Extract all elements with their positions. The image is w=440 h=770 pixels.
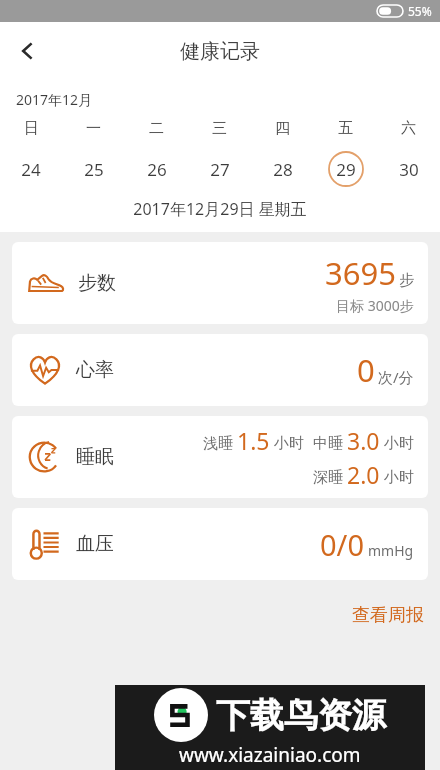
staticText: 小时 [274,434,304,453]
staticText: 查看周报 [352,604,424,627]
button[interactable]: 27 [188,148,251,190]
staticText: 24 [21,158,41,181]
staticText: 小时 [384,434,414,453]
button[interactable]: 查看周报 [336,598,440,633]
staticText: 55% [408,3,432,19]
button[interactable]: 睡眠 [12,416,428,498]
button[interactable]: 24 [0,148,62,190]
staticText: 2.0 [347,459,380,490]
staticText: 健康记录 [180,39,260,64]
staticText: 26 [147,158,167,181]
button[interactable]: 步数 [12,242,428,324]
staticText: 睡眠 [76,445,114,469]
staticText: 一 [86,119,101,138]
staticText: 浅睡 [203,434,233,453]
staticText: 三 [212,119,227,138]
staticText: www.xiazainiao.com [179,742,361,768]
button[interactable]: 26 [125,148,188,190]
button[interactable]: 25 [62,148,125,190]
button[interactable]: Back [0,23,56,79]
staticText: 二 [149,119,164,138]
staticText: 2017年12月29日 星期五 [0,198,440,220]
staticText: 27 [210,158,230,181]
staticText: 2017年12月 [16,90,93,109]
staticText: 3695 [325,252,396,294]
button[interactable]: 30 [377,148,440,190]
staticText: 深睡 [313,468,343,487]
staticText: 日 [24,119,39,138]
staticText: mmHg [368,541,414,560]
staticText: 小时 [384,468,414,487]
staticText: 五 [338,119,353,138]
button[interactable]: 心率 [12,334,428,406]
staticText: 血压 [76,532,114,556]
staticText: 0/0 [320,525,364,564]
button[interactable]: 28 [251,148,314,190]
staticText: 29 [336,158,356,181]
staticText: 3.0 [347,425,380,456]
staticText: 28 [273,158,293,181]
staticText: 1.5 [237,425,270,456]
staticText: 四 [275,119,290,138]
button[interactable]: 血压 [12,508,428,580]
staticText: 六 [401,119,416,138]
staticText: 次/分 [378,367,414,387]
staticText: 下载鸟资源 [216,694,386,737]
staticText: 步 [399,271,414,290]
staticText: 30 [399,158,419,181]
staticText: 0 [357,349,375,391]
staticText: 步数 [78,271,116,295]
staticText: 目标 3000步 [336,296,414,315]
staticText: 心率 [76,358,114,382]
staticText: 中睡 [313,434,343,453]
staticText: 25 [84,158,104,181]
button[interactable]: 29 [314,148,377,190]
